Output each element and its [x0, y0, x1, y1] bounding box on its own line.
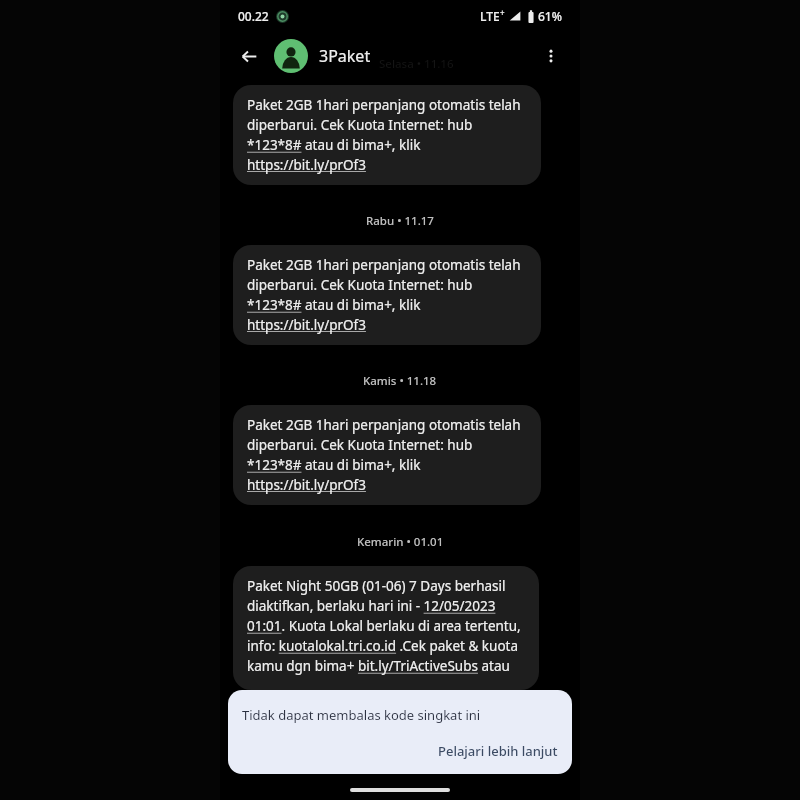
staticText: Rabu • 11.17	[366, 213, 434, 229]
staticText: 3Paket	[319, 45, 371, 67]
button[interactable]: Paket 2GB 1hari perpanjang otomatis tela…	[233, 245, 541, 345]
button[interactable]: Back	[230, 37, 268, 75]
staticText: Selasa • 11.16	[379, 56, 454, 72]
staticText: Paket 2GB 1hari perpanjang otomatis tela…	[247, 416, 527, 494]
staticText: Tidak dapat membalas kode singkat ini	[242, 706, 481, 724]
staticText: Kemarin • 01.01	[357, 534, 444, 550]
button[interactable]: Pelajari lebih lanjut	[438, 742, 558, 760]
staticText: 61%	[538, 8, 562, 24]
button[interactable]: Paket 2GB 1hari perpanjang otomatis tela…	[233, 85, 541, 185]
staticText: Paket 2GB 1hari perpanjang otomatis tela…	[247, 256, 527, 334]
button[interactable]: 3Paket	[274, 39, 532, 73]
staticText: Paket Night 50GB (01-06) 7 Days berhasil…	[247, 577, 525, 679]
staticText: LTE	[480, 8, 500, 24]
button[interactable]: Paket 2GB 1hari perpanjang otomatis tela…	[233, 405, 541, 505]
staticText: +	[500, 7, 505, 18]
button[interactable]: Tidak dapat membalas kode singkat ini	[228, 690, 572, 774]
button[interactable]: More options	[532, 37, 570, 75]
staticText: Kamis • 11.18	[363, 373, 437, 389]
staticText: 00.22	[238, 8, 269, 24]
staticText: Paket 2GB 1hari perpanjang otomatis tela…	[247, 96, 527, 174]
button[interactable]: Paket Night 50GB (01-06) 7 Days berhasil…	[233, 566, 539, 690]
